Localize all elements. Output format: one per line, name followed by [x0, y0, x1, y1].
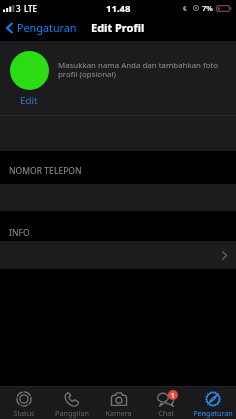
- button[interactable]: Pengaturan: [0, 18, 83, 40]
- staticText: 1: [171, 391, 175, 400]
- staticText: NOMOR TELEPON: [9, 165, 82, 177]
- staticText: Masukkan nama Anda dan tambahkan foto pr…: [58, 60, 228, 80]
- button[interactable]: Panggilan: [48, 388, 95, 418]
- staticText: INFO: [9, 227, 30, 239]
- staticText: Panggilan: [55, 408, 89, 418]
- staticText: 11.48: [106, 2, 131, 15]
- button[interactable]: 1: [142, 388, 189, 418]
- staticText: Kamera: [105, 408, 132, 418]
- staticText: Edit Profil: [91, 20, 145, 35]
- button[interactable]: Info: [0, 241, 236, 269]
- staticText: Chat: [158, 408, 174, 418]
- staticText: 7%: [202, 3, 213, 13]
- staticText: LTE: [24, 3, 38, 14]
- staticText: Pengaturan: [193, 408, 233, 418]
- button[interactable]: Kamera: [95, 388, 142, 418]
- staticText: Status: [13, 408, 35, 418]
- staticText: Pengaturan: [17, 20, 77, 35]
- button[interactable]: Status: [0, 388, 48, 418]
- button[interactable]: Profile photo: [10, 51, 49, 90]
- staticText: 3: [16, 3, 21, 14]
- button[interactable]: Pengaturan: [189, 388, 236, 418]
- button[interactable]: Edit: [20, 94, 38, 107]
